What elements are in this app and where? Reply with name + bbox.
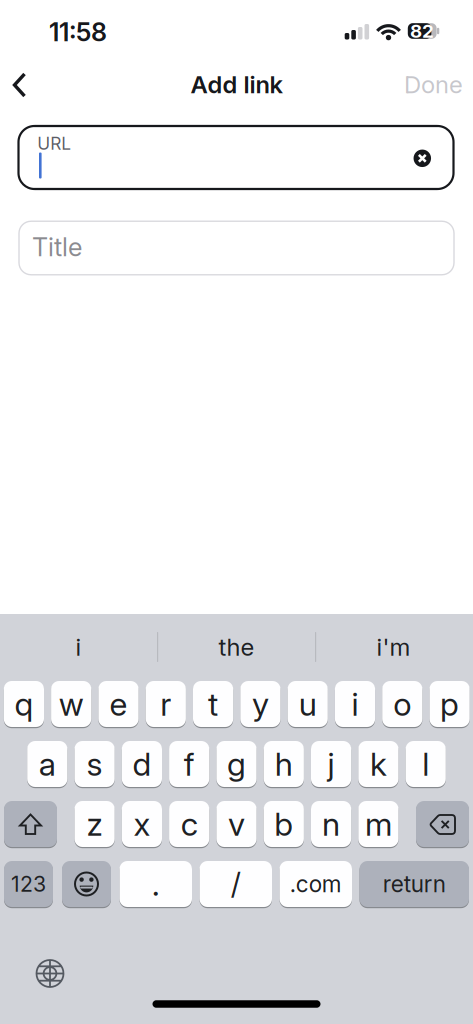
staticText: i (351, 685, 358, 723)
staticText: Title (32, 232, 82, 262)
staticText: Add link (190, 70, 282, 99)
staticText: . (152, 865, 160, 903)
staticText: 82 (410, 20, 434, 42)
staticText: h (275, 745, 293, 783)
staticText: f (184, 745, 195, 783)
staticText: Done (404, 70, 463, 99)
staticText: z (87, 805, 103, 843)
staticText: .com (290, 870, 342, 898)
staticText: the (218, 632, 254, 661)
staticText: d (132, 745, 151, 783)
staticText: i (75, 632, 81, 661)
staticText: 123 (11, 871, 46, 897)
staticText: t (208, 685, 218, 723)
staticText: n (322, 805, 340, 843)
staticText: g (227, 745, 246, 783)
staticText: URL (37, 133, 71, 154)
staticText: b (274, 805, 293, 843)
staticText: k (370, 745, 387, 783)
staticText: a (39, 745, 56, 783)
staticText: q (14, 685, 33, 723)
staticText: o (393, 685, 411, 723)
staticText: c (181, 805, 198, 843)
staticText: i'm (376, 632, 410, 661)
staticText: w (59, 685, 84, 723)
staticText: 11:58 (49, 17, 107, 47)
staticText: / (231, 866, 241, 902)
staticText: j (328, 745, 335, 783)
staticText: u (299, 685, 317, 723)
staticText: r (160, 685, 171, 723)
staticText: l (422, 745, 429, 783)
staticText: return (383, 870, 446, 898)
staticText: y (252, 685, 269, 723)
staticText: p (440, 685, 459, 723)
staticText: v (228, 805, 245, 843)
staticText: m (365, 805, 392, 843)
staticText: e (109, 685, 127, 723)
staticText: s (87, 745, 103, 783)
staticText: x (133, 805, 150, 843)
